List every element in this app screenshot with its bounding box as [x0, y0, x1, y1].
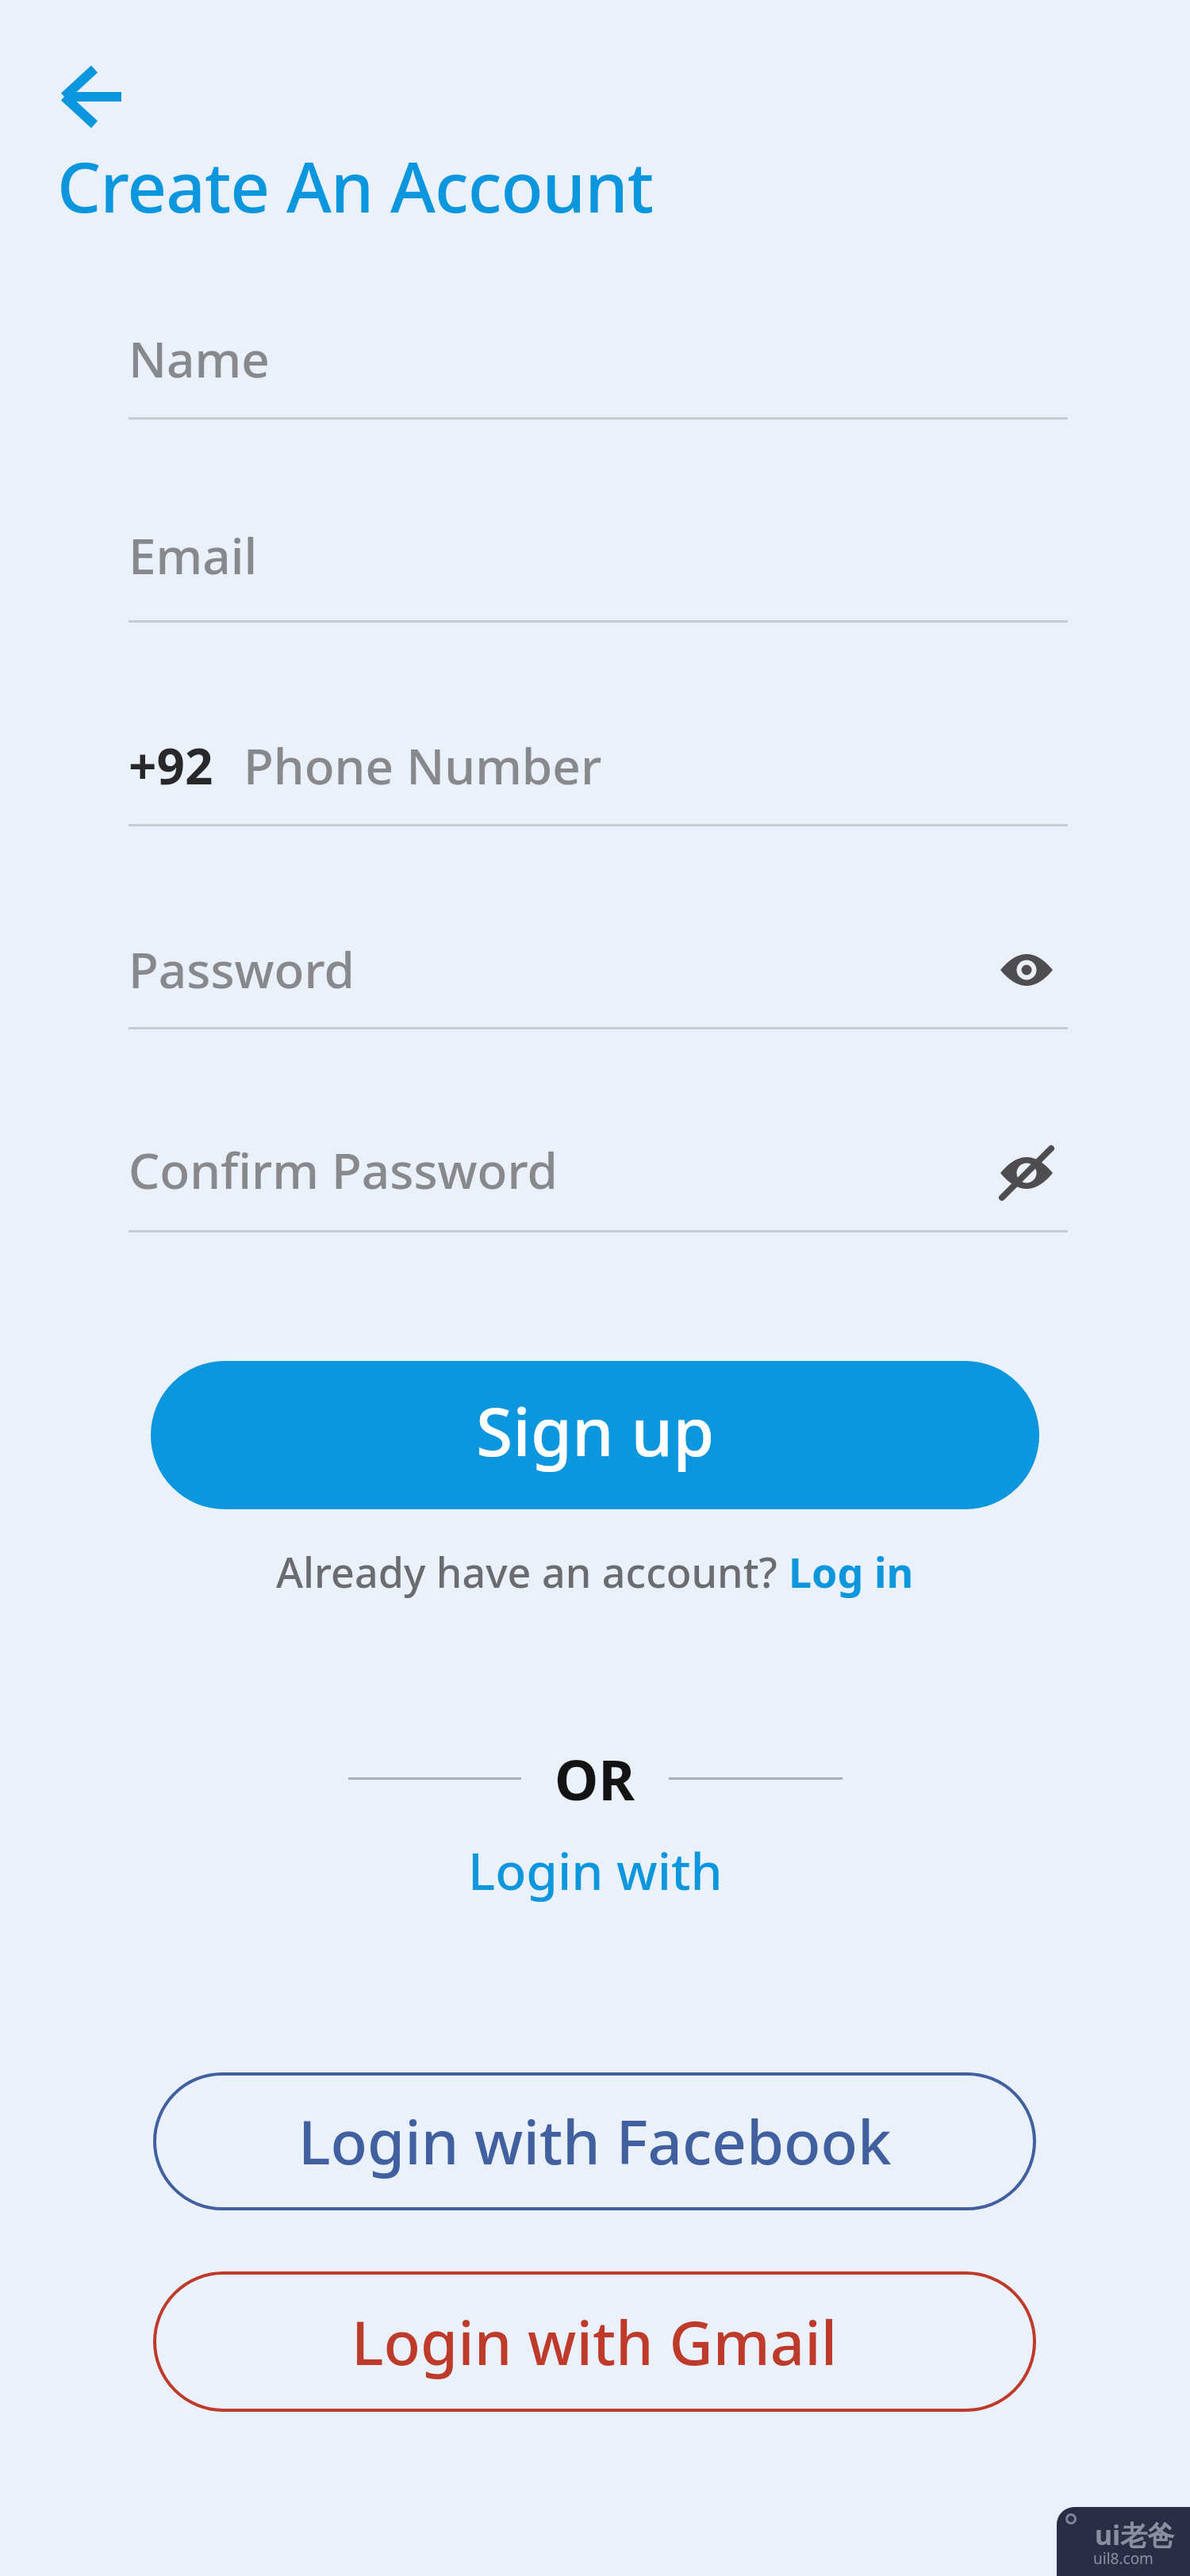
button[interactable] — [995, 938, 1058, 1002]
staticText: Name — [129, 325, 270, 392]
staticText: Login with — [468, 1836, 723, 1905]
staticText: Create An Account — [57, 139, 654, 232]
button[interactable]: Sign up — [151, 1361, 1039, 1509]
button[interactable]: Login with Gmail — [153, 2271, 1036, 2412]
button[interactable]: Already have an account? — [276, 1543, 914, 1600]
staticText: Password — [129, 936, 355, 1002]
staticText: Login with Facebook — [298, 2100, 892, 2183]
staticText: Log in — [789, 1543, 914, 1600]
staticText: ui老爸 — [1095, 2517, 1175, 2551]
staticText: uil8.com — [1093, 2548, 1154, 2569]
staticText: Already have an account? — [276, 1543, 789, 1600]
staticText: Phone Number — [244, 732, 602, 799]
staticText: OR — [555, 1741, 635, 1816]
staticText: Email — [129, 522, 258, 588]
staticText: Confirm Password — [129, 1137, 558, 1203]
button[interactable]: Login with Facebook — [153, 2072, 1036, 2210]
staticText: +92 — [129, 732, 213, 799]
button[interactable] — [995, 1141, 1058, 1205]
staticText: Sign up — [476, 1385, 715, 1475]
button[interactable] — [55, 59, 131, 135]
staticText: Login with Gmail — [351, 2301, 838, 2383]
